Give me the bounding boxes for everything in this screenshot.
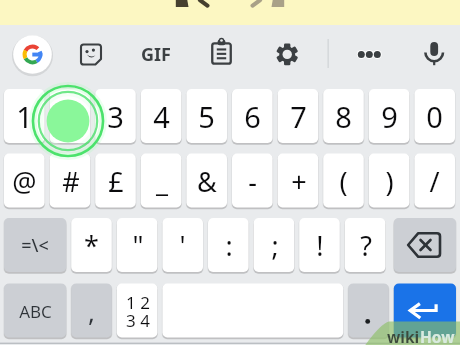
staticText: =\< [21, 233, 49, 258]
button[interactable]: # [50, 154, 91, 208]
button[interactable]: £ [95, 154, 136, 208]
staticText: 1 2 3 4 [126, 291, 150, 332]
button[interactable]: Voice input [417, 37, 452, 72]
button[interactable]: 5 [186, 89, 227, 143]
button[interactable]: _ [141, 154, 182, 208]
button[interactable]: Backspace [394, 218, 456, 272]
button[interactable]: ' [162, 218, 203, 272]
staticText: 7 [290, 97, 307, 136]
staticText: - [248, 163, 257, 200]
button[interactable]: 2 [50, 89, 91, 143]
staticText: 2 [62, 97, 79, 136]
staticText: wiki [387, 326, 420, 345]
staticText: ! [316, 227, 324, 264]
staticText: * [84, 227, 99, 264]
staticText: : [225, 227, 233, 264]
staticText: GIF [141, 42, 171, 63]
staticText: # [62, 163, 80, 200]
button[interactable]: 1 [4, 89, 45, 143]
button[interactable]: Stickers [74, 37, 108, 72]
button[interactable]: ABC [4, 284, 66, 338]
staticText: 9 [381, 97, 398, 136]
button[interactable]: ( [323, 154, 364, 208]
button[interactable]: 6 [232, 89, 273, 143]
staticText: 6 [244, 97, 261, 136]
button[interactable]: 9 [369, 89, 410, 143]
staticText: ? [360, 227, 372, 264]
button[interactable]: " [117, 218, 158, 272]
button[interactable]: 8 [323, 89, 364, 143]
button[interactable]: , [71, 284, 112, 338]
button[interactable]: Enter [394, 284, 456, 338]
staticText: 8 [335, 97, 352, 136]
button[interactable]: Space [162, 284, 343, 338]
button[interactable]: Redo [248, 0, 293, 22]
staticText: 1 [16, 97, 33, 136]
staticText: ( [339, 163, 348, 200]
button[interactable]: 3 [95, 89, 136, 143]
staticText: 0 [426, 97, 443, 136]
button[interactable]: & [186, 154, 227, 208]
staticText: _ [156, 163, 168, 200]
button[interactable]: 7 [278, 89, 319, 143]
button[interactable]: Settings [270, 37, 305, 72]
staticText: & [197, 163, 217, 200]
button[interactable]: =\< [4, 218, 66, 272]
button[interactable]: - [232, 154, 273, 208]
button[interactable]: + [278, 154, 319, 208]
staticText: ; [271, 227, 279, 264]
staticText: 3 [107, 97, 124, 136]
button[interactable]: @ [4, 154, 45, 208]
staticText: 5 [198, 97, 215, 136]
button[interactable]: 0 [414, 89, 455, 143]
staticText: ABC [19, 300, 52, 323]
button[interactable]: : [208, 218, 249, 272]
staticText: , [88, 294, 95, 329]
staticText: ) [385, 163, 394, 200]
button[interactable]: Undo [168, 0, 213, 22]
button[interactable]: GIF [137, 42, 174, 63]
button[interactable]: More options [352, 37, 387, 72]
button[interactable]: / [414, 154, 455, 208]
button[interactable]: 4 [141, 89, 182, 143]
button[interactable]: ! [299, 218, 340, 272]
button[interactable]: Period [348, 284, 389, 338]
staticText: " [132, 227, 144, 264]
staticText: ' [179, 227, 186, 264]
staticText: How [420, 326, 455, 345]
button[interactable]: 1 2 3 4 [117, 284, 158, 338]
button[interactable]: ) [369, 154, 410, 208]
staticText: @ [12, 163, 37, 200]
staticText: 4 [153, 97, 170, 136]
button[interactable]: Google search [13, 35, 52, 74]
staticText: £ [108, 163, 124, 200]
staticText: + [291, 163, 307, 200]
staticText: / [429, 163, 440, 200]
button[interactable]: ; [254, 218, 295, 272]
button[interactable]: ? [345, 218, 386, 272]
button[interactable]: * [71, 218, 112, 272]
button[interactable]: Clipboard [204, 37, 239, 72]
